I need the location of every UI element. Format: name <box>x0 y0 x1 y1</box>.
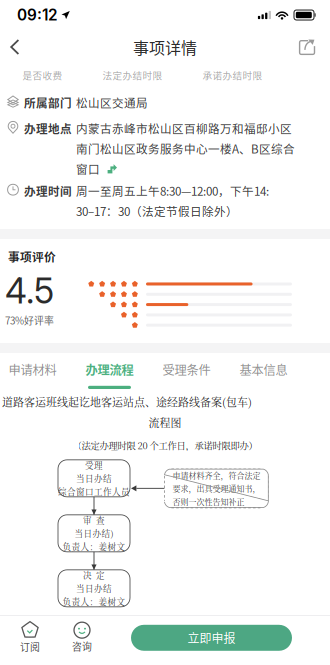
staticText: 松山区交通局 <box>76 94 148 111</box>
staticText: 订阅 <box>20 640 40 654</box>
button[interactable]: 受理条件 <box>148 353 225 391</box>
staticText: 南门松山区政务服务中心一楼A、B区综合 <box>76 140 295 157</box>
staticText: 办理时间 <box>24 182 72 199</box>
staticText: 负责人：姜树文 <box>62 595 125 608</box>
staticText: 申请材料 <box>8 360 56 378</box>
staticText: 窗口 <box>76 160 100 177</box>
staticText: 流程图 <box>148 415 181 430</box>
staticText: 承诺办结时限 <box>202 68 262 82</box>
staticText: 审 查 <box>83 514 105 526</box>
button[interactable]: 返回 <box>1 30 29 64</box>
staticText: 负责人：姜树文 <box>62 540 125 553</box>
staticText: 受理条件 <box>162 360 210 378</box>
button[interactable]: 申请材料 <box>0 353 71 391</box>
button[interactable]: 咨询 <box>56 619 108 657</box>
staticText: 当日办结) <box>74 527 113 539</box>
staticText: 周一至周五上午8:30—12:00，下午14: <box>76 182 269 199</box>
staticText: 否则一次性告知补正 <box>172 496 244 507</box>
staticText: 咨询 <box>72 639 92 653</box>
staticText: 综合窗口工作人员 <box>58 485 130 498</box>
staticText: 所属部门 <box>24 94 72 111</box>
staticText: 办理流程 <box>85 360 133 378</box>
button[interactable]: 基本信息 <box>225 353 302 391</box>
staticText: 是否收费 <box>22 68 62 82</box>
staticText: 决 定 <box>83 569 105 581</box>
staticText: 申请材料齐全，符合法定 <box>172 469 260 481</box>
staticText: 事项详情 <box>133 35 197 59</box>
staticText: 73%好评率 <box>5 313 54 327</box>
staticText: 要求，出具受理通知书， <box>172 483 260 494</box>
button[interactable]: 办理流程 <box>71 353 148 391</box>
staticText: 30–17：30（法定节假日除外） <box>76 202 238 219</box>
staticText: 道路客运班线起讫地客运站点、途经路线备案(包车) <box>2 394 252 410</box>
button[interactable]: 立即申报 <box>131 625 292 651</box>
staticText: 09:12 <box>17 6 58 24</box>
staticText: 当日办结 <box>76 472 112 484</box>
staticText: 当日办结 <box>76 582 112 594</box>
staticText: （法定办理时限 20 个工作日，承诺时限即办） <box>72 438 257 452</box>
staticText: 内蒙古赤峰市松山区百柳路万和福邸小区 <box>76 120 292 137</box>
button[interactable]: 订阅 <box>4 619 56 657</box>
staticText: 受理 <box>85 459 103 471</box>
button[interactable]: 分享 <box>290 30 324 64</box>
staticText: 事项评价 <box>8 248 56 265</box>
staticText: 立即申报 <box>187 629 235 646</box>
staticText: 基本信息 <box>239 360 287 378</box>
staticText: 4.5 <box>5 270 54 312</box>
staticText: 办理地点 <box>24 120 72 137</box>
staticText: 法定办结时限 <box>102 68 162 82</box>
